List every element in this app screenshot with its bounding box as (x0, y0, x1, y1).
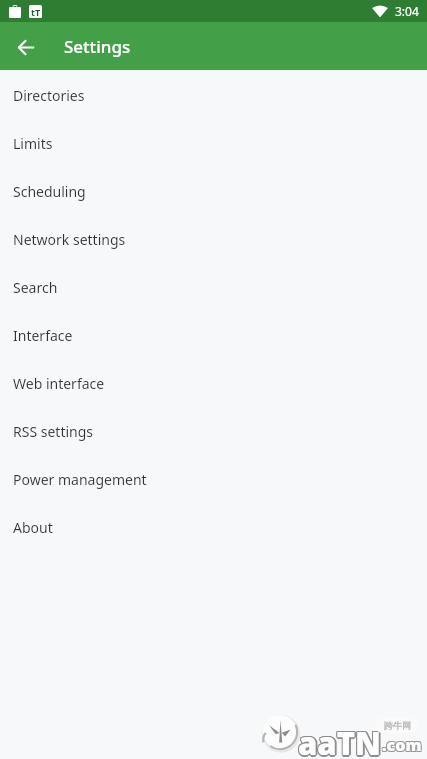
staticText: Web interface (13, 374, 105, 393)
staticText: Directories (13, 86, 85, 105)
staticText: .com (383, 735, 423, 757)
button[interactable]: Limits (0, 119, 427, 167)
staticText: About (13, 518, 53, 537)
staticText: aaTN (298, 722, 381, 759)
button[interactable]: RSS settings (0, 407, 427, 455)
staticText: aaTN (297, 722, 380, 759)
staticText: Settings (64, 35, 131, 58)
staticText: .com (381, 735, 421, 757)
button[interactable]: Directories (0, 71, 427, 119)
button[interactable]: Scheduling (0, 167, 427, 215)
staticText: .com (381, 733, 421, 755)
staticText: Power management (13, 470, 147, 489)
staticText: aaTN (297, 723, 380, 759)
button[interactable]: About (0, 503, 427, 551)
button[interactable]: Interface (0, 311, 427, 359)
staticText: Limits (13, 134, 53, 153)
staticText: .com (383, 733, 423, 755)
staticText: Network settings (13, 230, 126, 249)
button[interactable]: Back (2, 23, 50, 71)
button[interactable]: Web interface (0, 359, 427, 407)
staticText: Search (13, 278, 58, 297)
staticText: aaTN (298, 724, 381, 759)
staticText: .com (382, 734, 422, 756)
staticText: Interface (13, 326, 73, 345)
button[interactable]: Network settings (0, 215, 427, 263)
staticText: Scheduling (13, 182, 86, 201)
staticText: aaTN (300, 722, 383, 759)
staticText: aaTN (299, 723, 382, 759)
staticText: 跨牛网 (384, 720, 411, 731)
staticText: tT (31, 6, 41, 18)
staticText: aaTN (299, 721, 382, 759)
staticText: aaTN (298, 721, 381, 759)
button[interactable]: Power management (0, 455, 427, 503)
button[interactable]: Search (0, 263, 427, 311)
staticText: 3:04 (395, 3, 419, 19)
staticText: aaTN (297, 721, 380, 759)
staticText: RSS settings (13, 422, 94, 441)
